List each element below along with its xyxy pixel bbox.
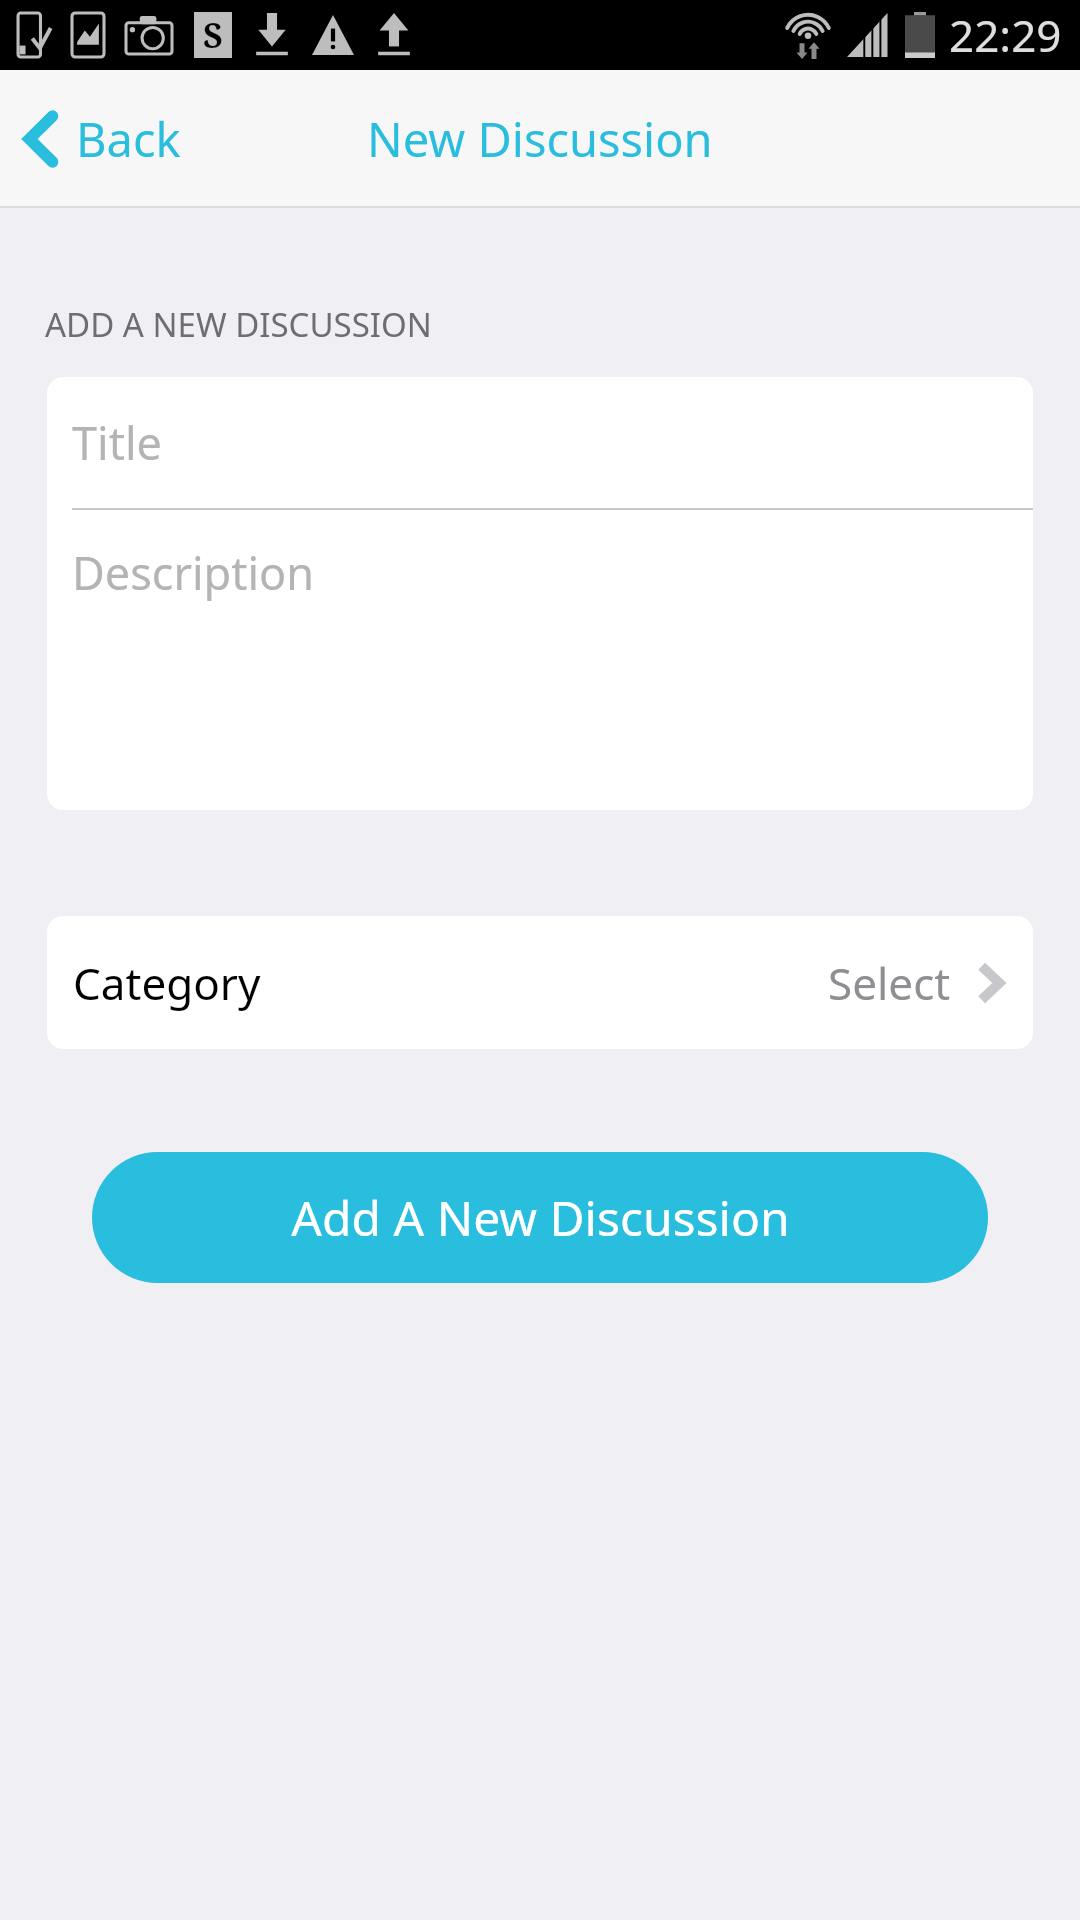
staticText: 22:29 <box>949 5 1062 65</box>
staticText: Back <box>76 107 181 171</box>
staticText: Description <box>72 542 315 603</box>
staticText: New Discussion <box>367 107 713 171</box>
button[interactable]: Description <box>47 510 1033 810</box>
staticText: Category <box>73 953 261 1013</box>
staticText: ADD A NEW DISCUSSION <box>45 302 432 347</box>
staticText: Title <box>72 412 162 473</box>
staticText: Select <box>828 953 951 1013</box>
button[interactable]: Title <box>47 377 1033 508</box>
staticText: S <box>203 12 223 58</box>
button[interactable]: Category <box>47 916 1033 1049</box>
staticText: Add A New Discussion <box>291 1185 790 1250</box>
button[interactable]: Back <box>0 89 205 189</box>
button[interactable]: Add A New Discussion <box>92 1152 988 1283</box>
